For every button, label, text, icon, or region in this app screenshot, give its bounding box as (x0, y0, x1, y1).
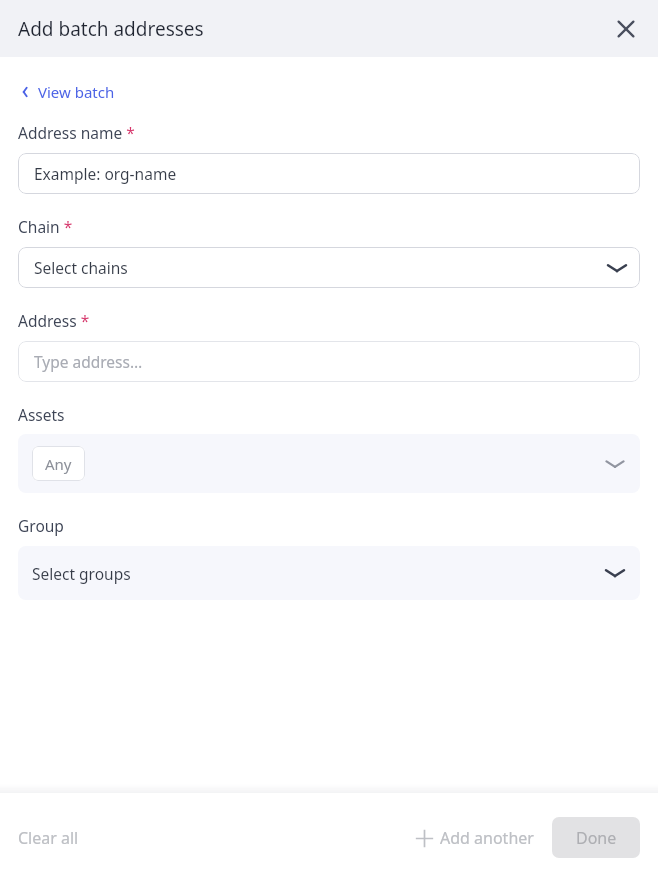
staticText: Group (18, 515, 64, 536)
button[interactable]: Clear all (10, 819, 87, 857)
staticText: Chain * (18, 216, 73, 237)
staticText: Address name * (18, 122, 135, 143)
button[interactable]: Close (608, 11, 644, 47)
staticText: Example: org-name (34, 163, 177, 184)
staticText: View batch (38, 82, 115, 102)
button[interactable]: Add another (410, 819, 540, 857)
button[interactable]: Type address… (18, 341, 640, 382)
button[interactable]: Done (552, 817, 640, 858)
button[interactable]: Select groups (18, 546, 640, 600)
staticText: Done (576, 827, 617, 849)
staticText: Add batch addresses (18, 16, 204, 42)
staticText: Address * (18, 310, 90, 331)
staticText: Clear all (18, 827, 79, 849)
staticText: Any (45, 454, 72, 474)
staticText: Select chains (34, 257, 604, 278)
button[interactable]: Any (32, 446, 85, 481)
button[interactable]: View batch (14, 79, 119, 105)
button[interactable]: Select chains (18, 247, 640, 288)
button[interactable]: Example: org-name (18, 153, 640, 194)
staticText: Select groups (32, 563, 602, 584)
staticText: Type address… (34, 351, 143, 372)
button[interactable]: Any (18, 434, 640, 493)
staticText: Assets (18, 404, 65, 425)
staticText: Add another (440, 827, 534, 849)
